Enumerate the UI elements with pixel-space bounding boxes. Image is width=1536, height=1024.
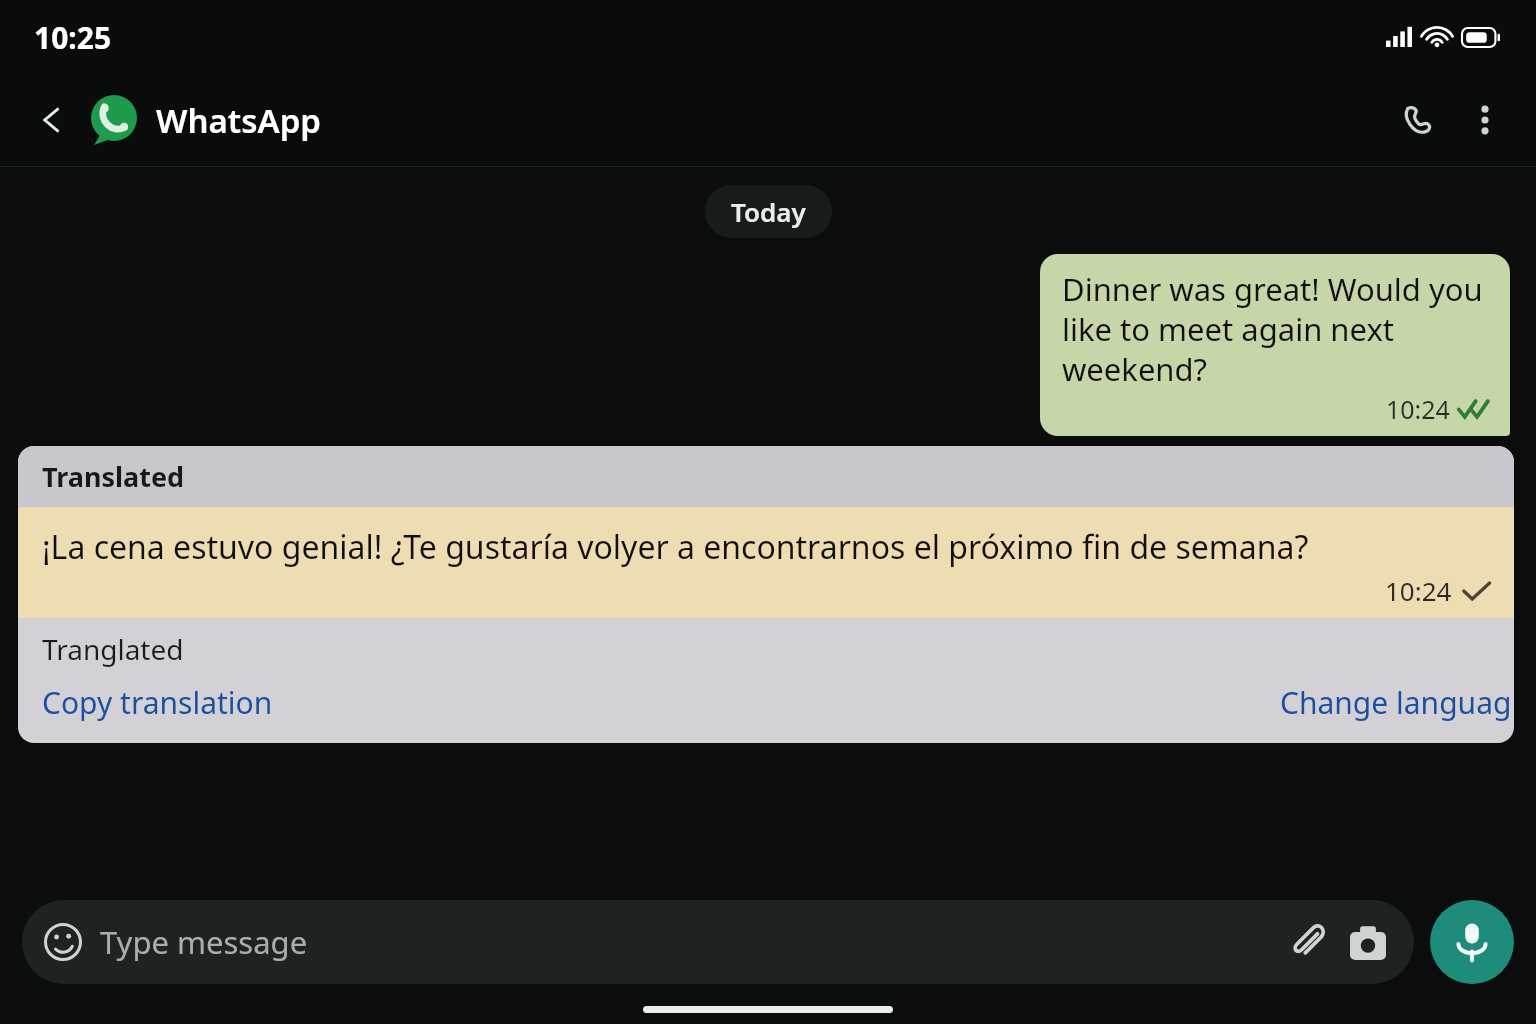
button[interactable]: Dinner was great! Would you like to meet… bbox=[1040, 254, 1510, 436]
staticText: Type message bbox=[100, 921, 308, 963]
button[interactable]: Change languag bbox=[1280, 678, 1514, 727]
button[interactable]: Type message bbox=[22, 900, 1414, 984]
button[interactable]: Attach bbox=[1284, 918, 1332, 966]
staticText: Tranglated bbox=[42, 630, 184, 668]
staticText: Translated bbox=[42, 458, 185, 495]
staticText: Copy translation bbox=[42, 682, 273, 723]
button[interactable]: Record voice message bbox=[1430, 900, 1514, 984]
staticText: Dinner was great! Would you like to meet… bbox=[1062, 268, 1492, 390]
staticText: 10:25 bbox=[34, 17, 112, 58]
button[interactable]: More options bbox=[1460, 95, 1510, 145]
button[interactable]: Call bbox=[1390, 92, 1446, 148]
button[interactable]: Translated bbox=[18, 446, 1514, 743]
button[interactable]: Back bbox=[26, 94, 78, 146]
staticText: 10:24 bbox=[1385, 573, 1452, 608]
button[interactable]: Copy translation bbox=[18, 678, 283, 727]
staticText: Change languag bbox=[1280, 682, 1512, 723]
staticText: ¡La cena estuvo genial! ¿Te gustaría vol… bbox=[42, 525, 1309, 569]
button[interactable]: Today bbox=[705, 185, 832, 238]
button[interactable]: Camera bbox=[1344, 918, 1392, 966]
staticText: Today bbox=[731, 194, 806, 229]
staticText: 10:24 bbox=[1386, 392, 1450, 426]
staticText: WhatsApp bbox=[156, 98, 321, 143]
